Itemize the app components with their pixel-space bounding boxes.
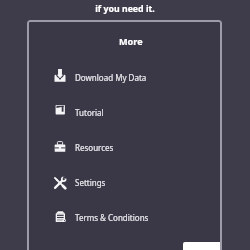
- button[interactable]: Settings: [27, 165, 222, 200]
- button[interactable]: Tutorial: [27, 95, 222, 130]
- staticText: Download My Data: [75, 72, 147, 83]
- staticText: Settings: [75, 177, 106, 188]
- button[interactable]: Resources: [27, 130, 222, 165]
- button[interactable]: Chat with us: [183, 242, 222, 250]
- staticText: if you need it.: [0, 3, 250, 15]
- button[interactable]: Terms & Conditions: [27, 200, 222, 235]
- staticText: Resources: [75, 142, 114, 153]
- staticText: More: [119, 35, 143, 47]
- button[interactable]: Download My Data: [27, 60, 222, 95]
- staticText: Terms & Conditions: [75, 212, 149, 223]
- staticText: Tutorial: [75, 107, 104, 118]
